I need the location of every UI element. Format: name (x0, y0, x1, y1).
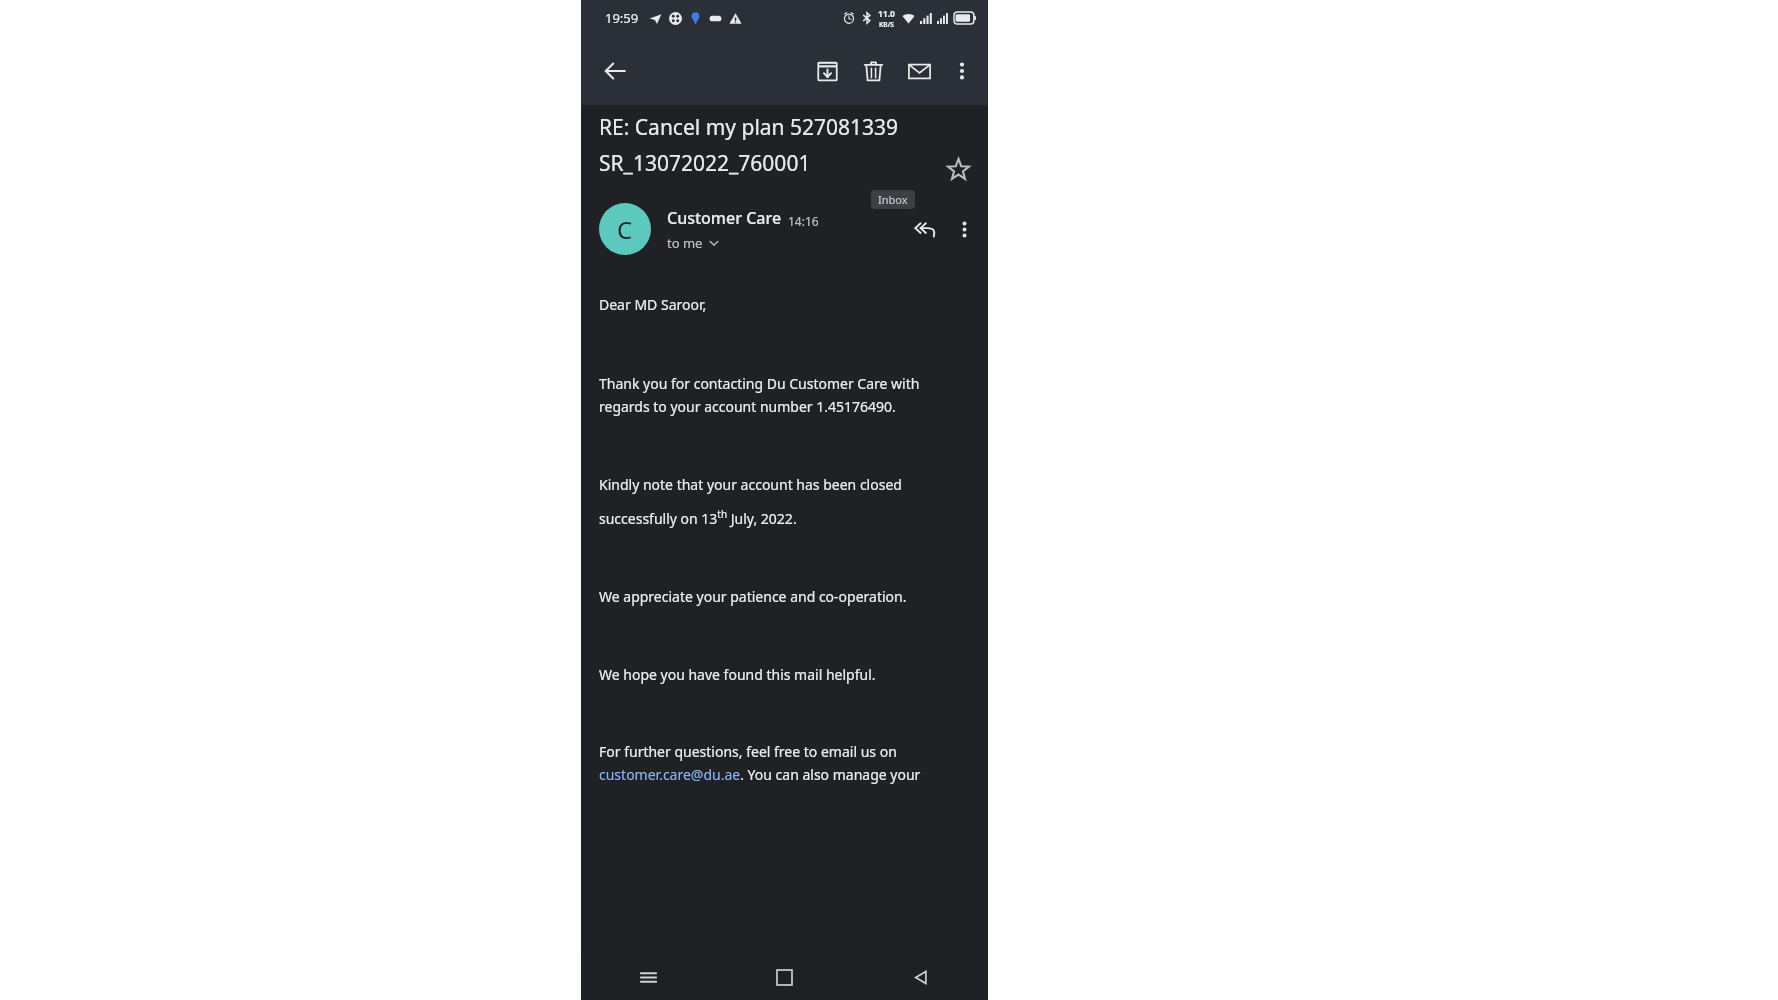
button[interactable]: Archive (804, 48, 850, 94)
staticText: RE: Cancel my plan 527081339 SR_13072022… (599, 113, 934, 177)
staticText: C (617, 213, 633, 246)
button[interactable]: C (599, 203, 651, 255)
staticText: We hope you have found this mail helpful… (599, 665, 876, 684)
staticText: Customer Care (667, 207, 782, 229)
staticText: 14:16 (788, 213, 819, 229)
staticText: Inbox (878, 192, 908, 207)
staticText: Thank you for contacting Du Customer Car… (599, 374, 970, 416)
button[interactable]: More options (946, 211, 982, 247)
button[interactable]: More options (942, 51, 982, 91)
staticText: KB/S (879, 20, 894, 29)
button[interactable]: Home (716, 955, 852, 1000)
staticText: 19:59 (605, 9, 639, 27)
button[interactable]: Back (852, 955, 988, 1000)
staticText: Kindly note that your account has been c… (599, 475, 970, 528)
staticText: to me (667, 234, 703, 252)
staticText: We appreciate your patience and co-opera… (599, 587, 907, 606)
button[interactable]: Delete (850, 48, 896, 94)
button[interactable]: Star (938, 149, 978, 189)
button[interactable]: Back (593, 49, 637, 93)
button[interactable]: Mark unread (896, 48, 942, 94)
staticText: 11.0 (878, 8, 895, 20)
staticText: For further questions, feel free to emai… (599, 742, 970, 784)
button[interactable]: Recents (581, 955, 716, 1000)
staticText: Dear MD Saroor, (599, 295, 707, 314)
button[interactable]: Reply all (904, 208, 946, 250)
button[interactable]: to me (667, 234, 720, 252)
